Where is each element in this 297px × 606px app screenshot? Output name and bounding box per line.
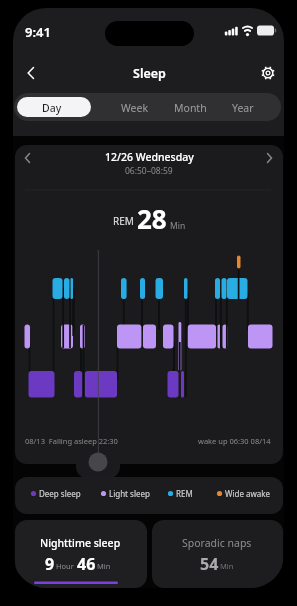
- staticText: Day: [42, 101, 62, 115]
- staticText: Wide awake: [225, 488, 271, 499]
- staticText: 28: [137, 201, 167, 236]
- button[interactable]: [168, 93, 226, 121]
- staticText: 54: [200, 553, 219, 573]
- staticText: Month: [174, 101, 207, 115]
- staticText: 9:41: [25, 23, 51, 41]
- button[interactable]: [15, 520, 147, 588]
- button[interactable]: [259, 146, 281, 170]
- staticText: 06:50–08:59: [125, 165, 173, 177]
- staticText: REM: [113, 214, 134, 228]
- staticText: Hour: [56, 561, 74, 571]
- button[interactable]: [152, 520, 283, 588]
- button[interactable]: [85, 449, 111, 475]
- staticText: Week: [121, 101, 149, 115]
- staticText: Min: [170, 220, 186, 232]
- button[interactable]: [226, 93, 281, 121]
- staticText: 9: [45, 553, 55, 573]
- button[interactable]: [21, 61, 45, 85]
- staticText: REM: [176, 488, 193, 499]
- staticText: Light sleep: [109, 488, 150, 499]
- staticText: Min: [220, 561, 234, 571]
- staticText: 08/13 Falling asleep 22:30: [25, 436, 118, 446]
- button[interactable]: [256, 61, 280, 85]
- staticText: Nighttime sleep: [40, 536, 121, 550]
- staticText: 46: [77, 553, 96, 573]
- staticText: 12/26 Wednesday: [105, 150, 194, 164]
- staticText: Min: [97, 561, 111, 571]
- staticText: Sleep: [133, 65, 166, 82]
- staticText: wake up 06:30 08/14: [198, 436, 271, 446]
- staticText: Year: [232, 101, 254, 115]
- button[interactable]: [17, 97, 91, 117]
- button[interactable]: [104, 93, 168, 121]
- staticText: Deep sleep: [39, 488, 81, 499]
- staticText: Sporadic naps: [182, 536, 252, 550]
- button[interactable]: [17, 146, 39, 170]
